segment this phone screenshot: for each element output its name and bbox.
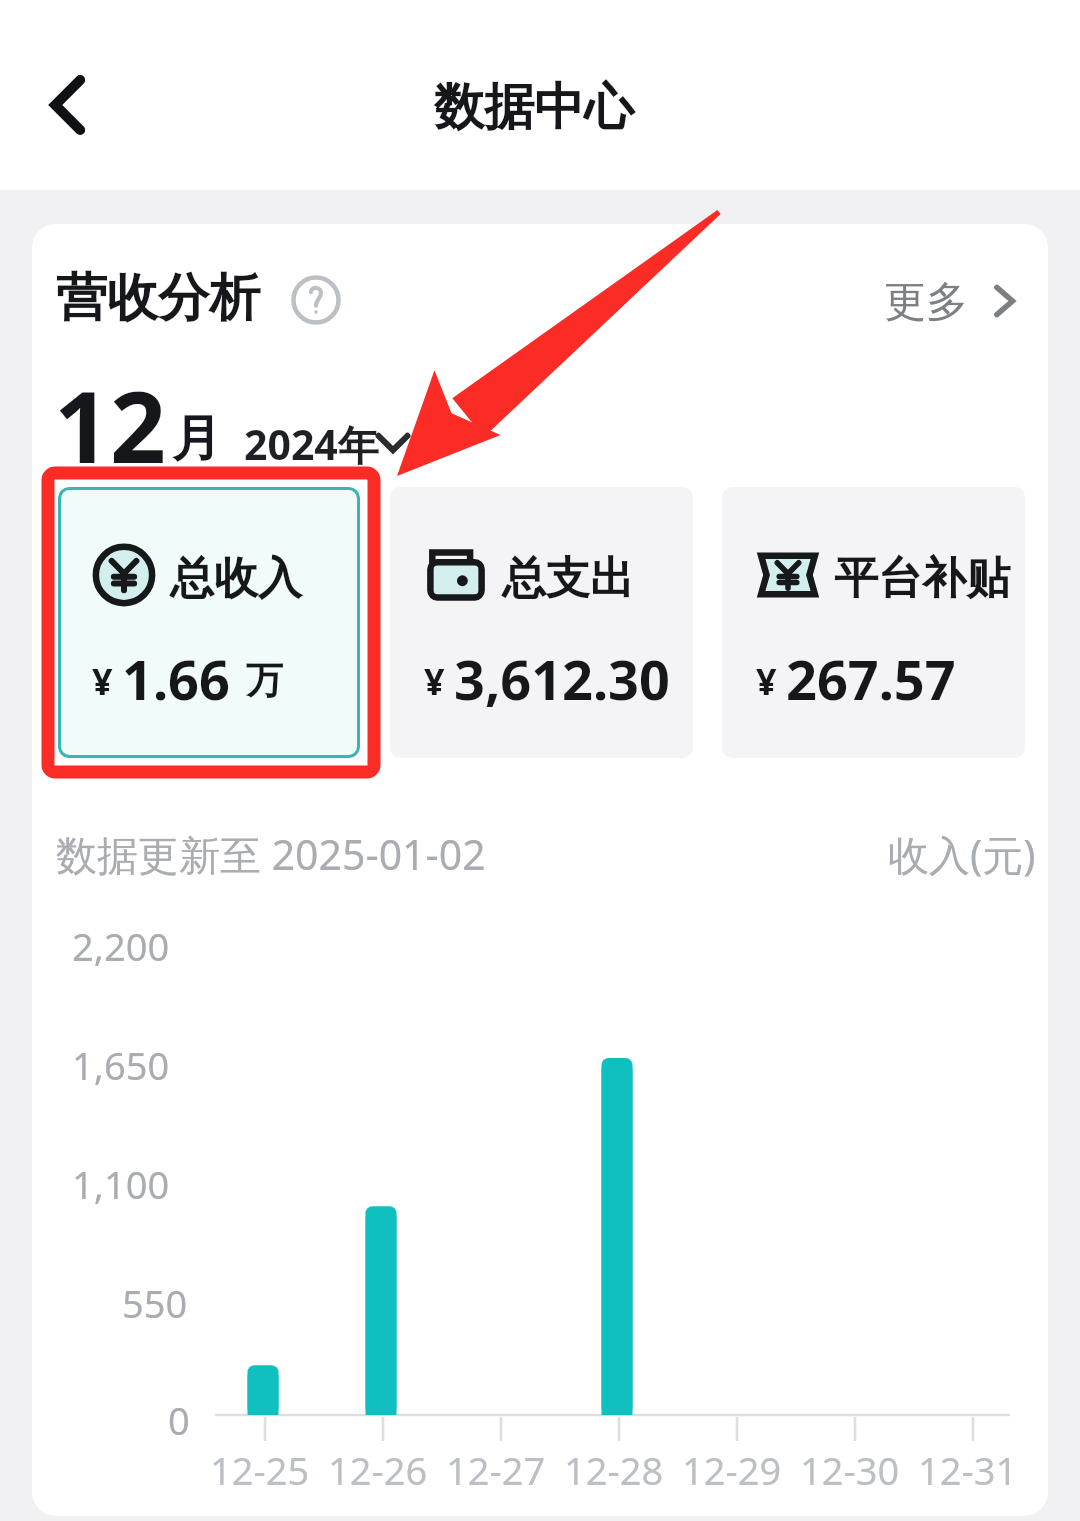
button[interactable]: 更多: [880, 272, 1036, 330]
staticText: 营收分析: [56, 266, 260, 330]
staticText: 数据更新至 2025-01-02: [56, 826, 486, 882]
staticText: 12-25: [210, 1444, 310, 1496]
staticText: 12-28: [564, 1444, 664, 1496]
staticText: 0: [168, 1394, 190, 1444]
staticText: ¥: [92, 657, 113, 706]
staticText: 月: [172, 408, 221, 470]
staticText: 550: [122, 1277, 188, 1327]
staticText: 收入(元): [888, 826, 1036, 882]
staticText: 12-26: [328, 1444, 428, 1496]
staticText: 267.57: [786, 642, 956, 716]
staticText: 数据中心: [434, 76, 634, 139]
staticText: 总支出: [502, 551, 634, 606]
staticText: 12-27: [446, 1444, 546, 1496]
button[interactable]: 总支出: [390, 487, 693, 758]
staticText: 12-30: [800, 1444, 900, 1496]
button[interactable]: Help: [290, 274, 342, 326]
staticText: 平台补贴: [834, 551, 1010, 606]
staticText: 12: [54, 358, 167, 470]
button[interactable]: 12: [54, 360, 404, 472]
staticText: ¥: [424, 657, 445, 706]
staticText: 总收入: [170, 551, 302, 606]
staticText: 2,200: [72, 920, 170, 970]
button[interactable]: Back: [26, 62, 112, 148]
staticText: 更多: [884, 276, 968, 329]
staticText: 2024年: [244, 416, 379, 472]
staticText: 12-29: [682, 1444, 782, 1496]
staticText: 3,612.30: [454, 642, 670, 716]
button[interactable]: 总收入: [58, 487, 360, 758]
staticText: 万: [246, 657, 283, 704]
staticText: 1,100: [72, 1158, 170, 1208]
button[interactable]: 平台补贴: [722, 487, 1025, 758]
staticText: 1,650: [72, 1039, 170, 1089]
staticText: 12-31: [918, 1444, 1018, 1496]
staticText: ¥: [756, 657, 777, 706]
staticText: 1.66: [122, 642, 230, 716]
